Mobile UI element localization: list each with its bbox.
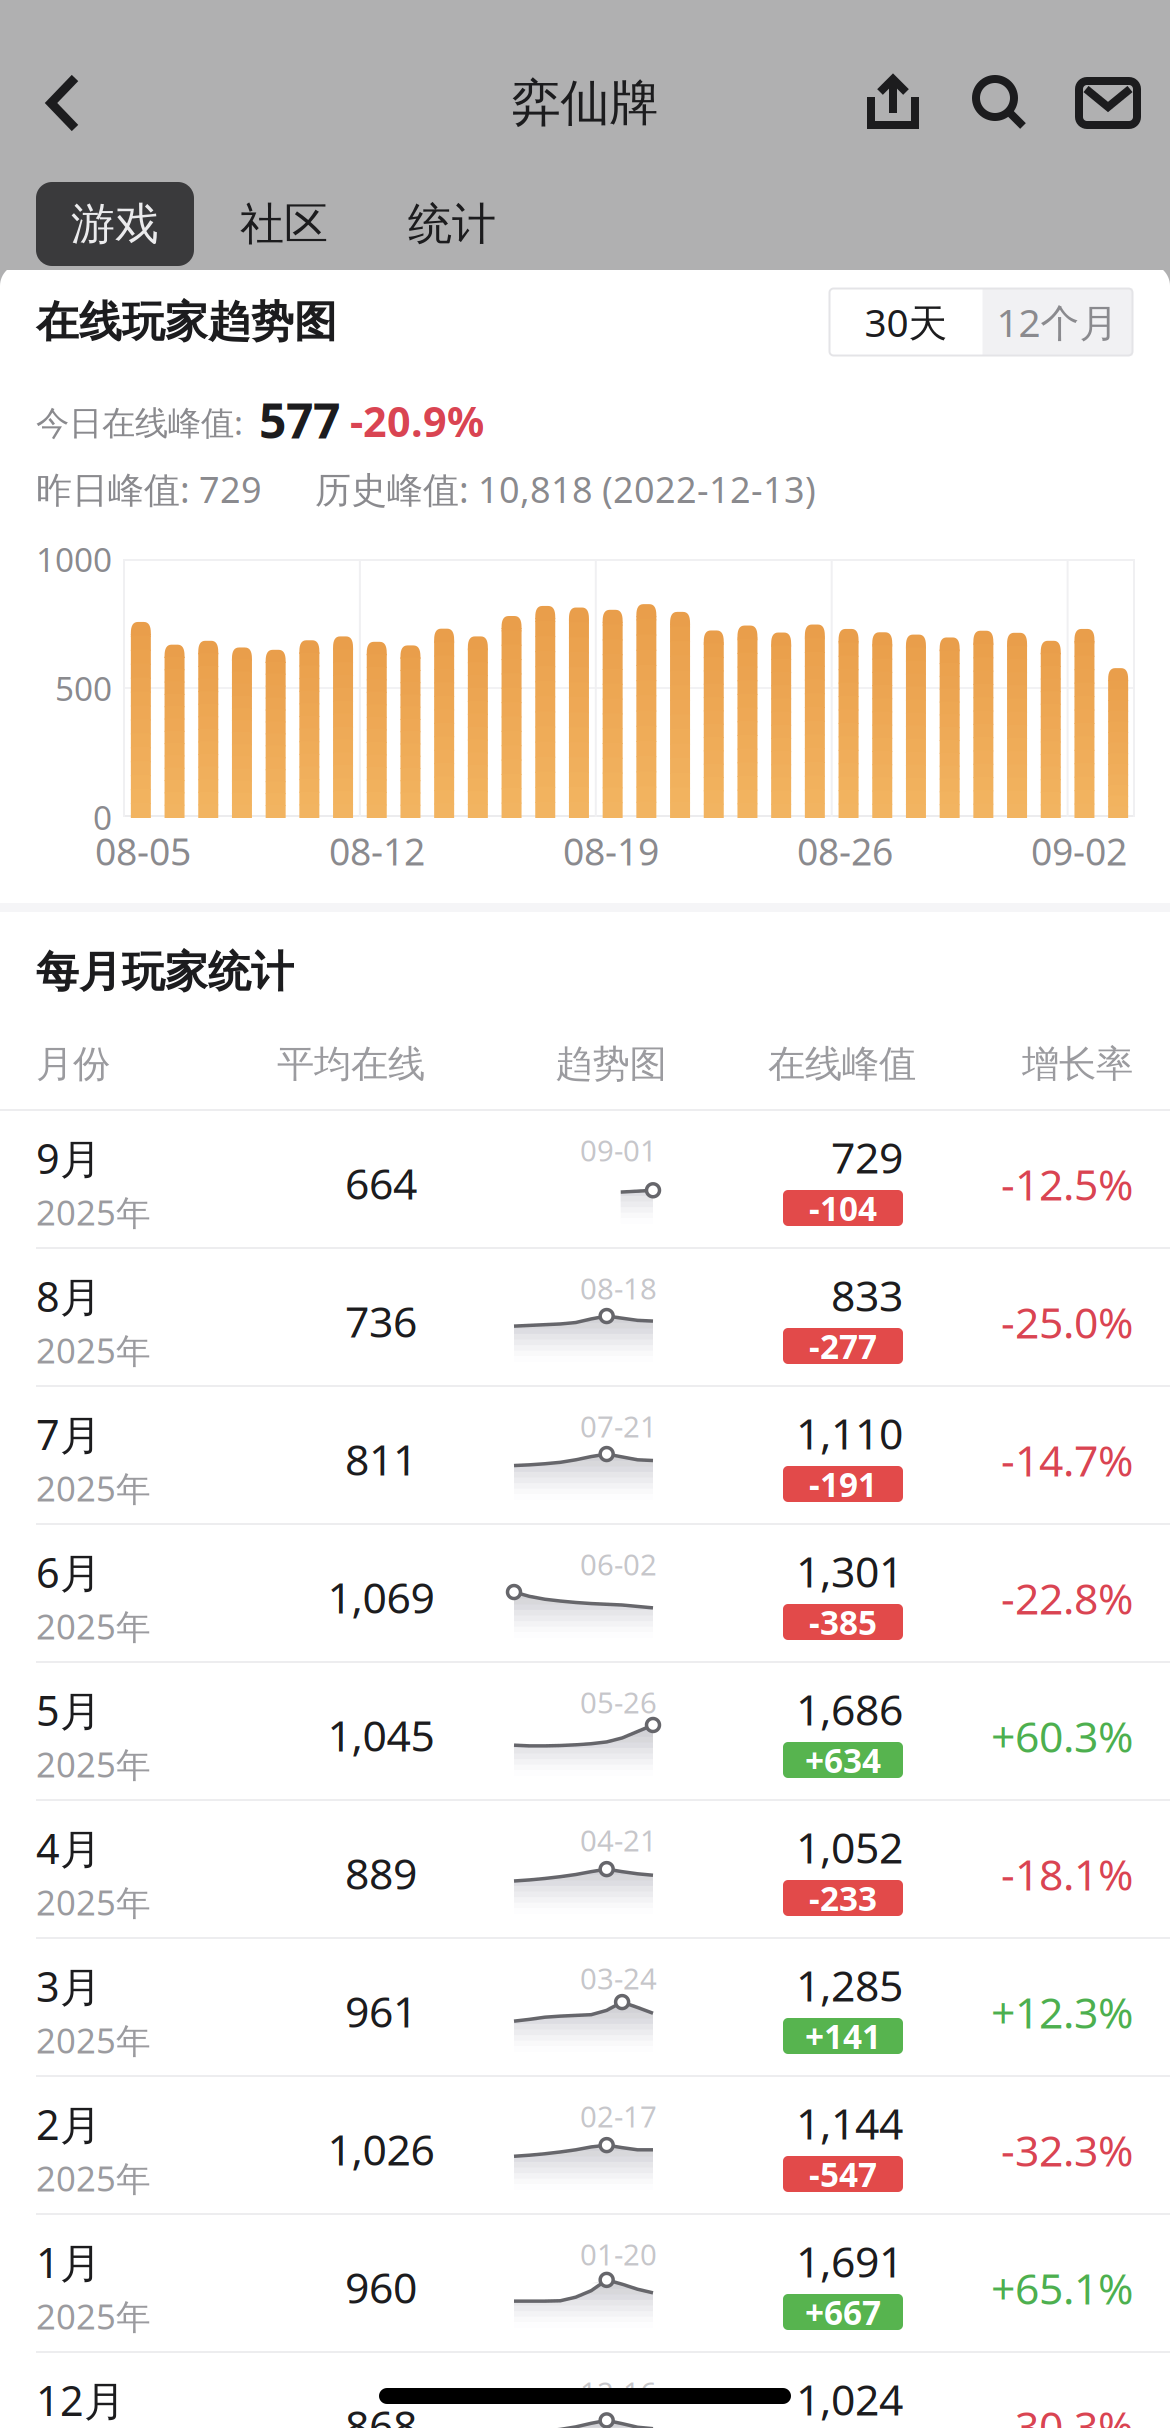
staticText: 08-19 <box>563 826 659 876</box>
staticText: 2025年 <box>36 2293 151 2339</box>
button[interactable]: 30天 <box>829 288 982 355</box>
staticText: -104 <box>809 1186 877 1230</box>
staticText: 游戏 <box>71 197 159 251</box>
staticText: 889 <box>345 1845 417 1901</box>
staticText: 每月玩家统计 <box>36 946 294 998</box>
staticText: 今日在线峰值: <box>36 400 243 444</box>
staticText: 961 <box>345 1983 417 2039</box>
staticText: 08-12 <box>329 826 425 876</box>
staticText: -25.0% <box>1001 1294 1133 1350</box>
staticText: 08-26 <box>797 826 893 876</box>
staticText: -14.7% <box>1001 1432 1133 1488</box>
staticText: 04-21 <box>580 1820 657 1859</box>
button[interactable]: 统计 <box>392 182 512 266</box>
staticText: +667 <box>805 2290 881 2334</box>
staticText: 2025年 <box>36 2155 151 2201</box>
staticText: 1月 <box>36 2235 101 2289</box>
button[interactable]: 2月 <box>0 2077 1170 2215</box>
staticText: 2025年 <box>36 1879 151 1925</box>
staticText: 2025年 <box>36 1189 151 1235</box>
staticText: 02-17 <box>580 2096 657 2135</box>
staticText: 2025年 <box>36 1603 151 1649</box>
staticText: 7月 <box>36 1407 101 1461</box>
staticText: 1,069 <box>327 1569 434 1625</box>
button[interactable]: 游戏 <box>36 182 194 266</box>
staticText: -12.5% <box>1001 1156 1133 1212</box>
staticText: -385 <box>809 1600 877 1644</box>
staticText: 664 <box>345 1155 417 1211</box>
button[interactable]: 12月 <box>0 2353 1170 2428</box>
staticText: 1,301 <box>796 1543 903 1599</box>
staticText: +12.3% <box>991 1984 1133 2040</box>
button[interactable]: 6月 <box>0 1525 1170 1663</box>
staticText: 729 <box>831 1129 903 1185</box>
button[interactable]: Share <box>843 55 943 151</box>
staticText: 1,686 <box>796 1681 903 1737</box>
staticText: 趋势图 <box>555 1041 666 1087</box>
staticText: 2025年 <box>36 1465 151 1511</box>
staticText: 736 <box>345 1293 417 1349</box>
button[interactable]: 7月 <box>0 1387 1170 1525</box>
button[interactable]: Search <box>950 55 1050 151</box>
button[interactable]: 12个月 <box>982 288 1132 355</box>
staticText: +141 <box>805 2014 881 2058</box>
staticText: -18.1% <box>1001 1846 1133 1902</box>
staticText: 社区 <box>240 197 328 251</box>
staticText: 577 <box>259 388 340 452</box>
staticText: 1,691 <box>796 2233 903 2289</box>
staticText: 1,045 <box>327 1707 434 1763</box>
staticText: 07-21 <box>580 1406 657 1445</box>
button[interactable]: 1月 <box>0 2215 1170 2353</box>
staticText: -30.3% <box>1001 2398 1133 2428</box>
staticText: 03-24 <box>580 1958 657 1997</box>
staticText: 3月 <box>36 1959 101 2013</box>
staticText: 1,052 <box>796 1819 903 1875</box>
button[interactable]: 社区 <box>224 182 344 266</box>
staticText: 1,024 <box>796 2371 903 2427</box>
staticText: 在线玩家趋势图 <box>36 296 337 348</box>
staticText: 增长率 <box>1022 1041 1133 1087</box>
staticText: 9月 <box>36 1131 101 1185</box>
button[interactable]: Back <box>10 55 118 151</box>
staticText: 09-02 <box>1031 826 1127 876</box>
staticText: 12月 <box>36 2373 125 2427</box>
staticText: 01-20 <box>580 2234 657 2273</box>
button[interactable]: 3月 <box>0 1939 1170 2077</box>
staticText: 弈仙牌 <box>511 73 658 133</box>
staticText: 5月 <box>36 1683 101 1737</box>
staticText: 历史峰值: 10,818 (2022-12-13) <box>315 465 816 513</box>
staticText: -191 <box>809 1462 877 1506</box>
staticText: 500 <box>55 666 112 710</box>
button[interactable]: 5月 <box>0 1663 1170 1801</box>
staticText: 2月 <box>36 2097 101 2151</box>
staticText: 2025年 <box>36 2017 151 2063</box>
staticText: -20.9% <box>350 394 484 448</box>
staticText: -32.3% <box>1001 2122 1133 2178</box>
button[interactable]: 8月 <box>0 1249 1170 1387</box>
staticText: 868 <box>345 2397 417 2428</box>
staticText: 0 <box>93 795 112 839</box>
staticText: +634 <box>805 1738 881 1782</box>
staticText: -277 <box>809 1324 877 1368</box>
staticText: 2025年 <box>36 1327 151 1373</box>
staticText: 8月 <box>36 1269 101 1323</box>
staticText: 1,026 <box>327 2121 434 2177</box>
staticText: +65.1% <box>991 2260 1133 2316</box>
staticText: 4月 <box>36 1821 101 1875</box>
staticText: 在线峰值 <box>768 1041 916 1087</box>
staticText: 08-18 <box>580 1268 657 1307</box>
staticText: 05-26 <box>580 1682 657 1721</box>
staticText: 平均在线 <box>277 1041 425 1087</box>
staticText: 12-16 <box>580 2372 657 2411</box>
button[interactable]: 9月 <box>0 1111 1170 1249</box>
staticText: -22.8% <box>1001 1570 1133 1626</box>
staticText: 1000 <box>36 537 112 581</box>
staticText: 2025年 <box>36 1741 151 1787</box>
staticText: 昨日峰值: 729 <box>36 465 262 513</box>
staticText: 1,285 <box>796 1957 903 2013</box>
button[interactable]: 4月 <box>0 1801 1170 1939</box>
staticText: 960 <box>345 2259 417 2315</box>
staticText: 12个月 <box>996 296 1118 348</box>
button[interactable]: Mail <box>1058 55 1158 151</box>
staticText: 30天 <box>864 296 947 348</box>
